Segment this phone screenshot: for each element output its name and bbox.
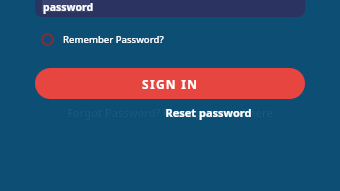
button[interactable]: Remember Password checkbox: [38, 30, 188, 49]
staticText: Remember Password?: [63, 33, 164, 46]
other: Remember Password checkbox: [38, 30, 57, 49]
button[interactable]: password: [35, 0, 305, 17]
staticText: Forgot Password? Reset password here: [67, 105, 273, 120]
button[interactable]: SIGN IN: [35, 68, 305, 99]
button[interactable]: Forgot Password? Reset password here: [35, 104, 305, 121]
staticText: Reset password: [165, 105, 252, 120]
button[interactable]: Reset password: [158, 104, 258, 121]
staticText: password: [43, 0, 94, 14]
staticText: SIGN IN: [142, 76, 199, 92]
